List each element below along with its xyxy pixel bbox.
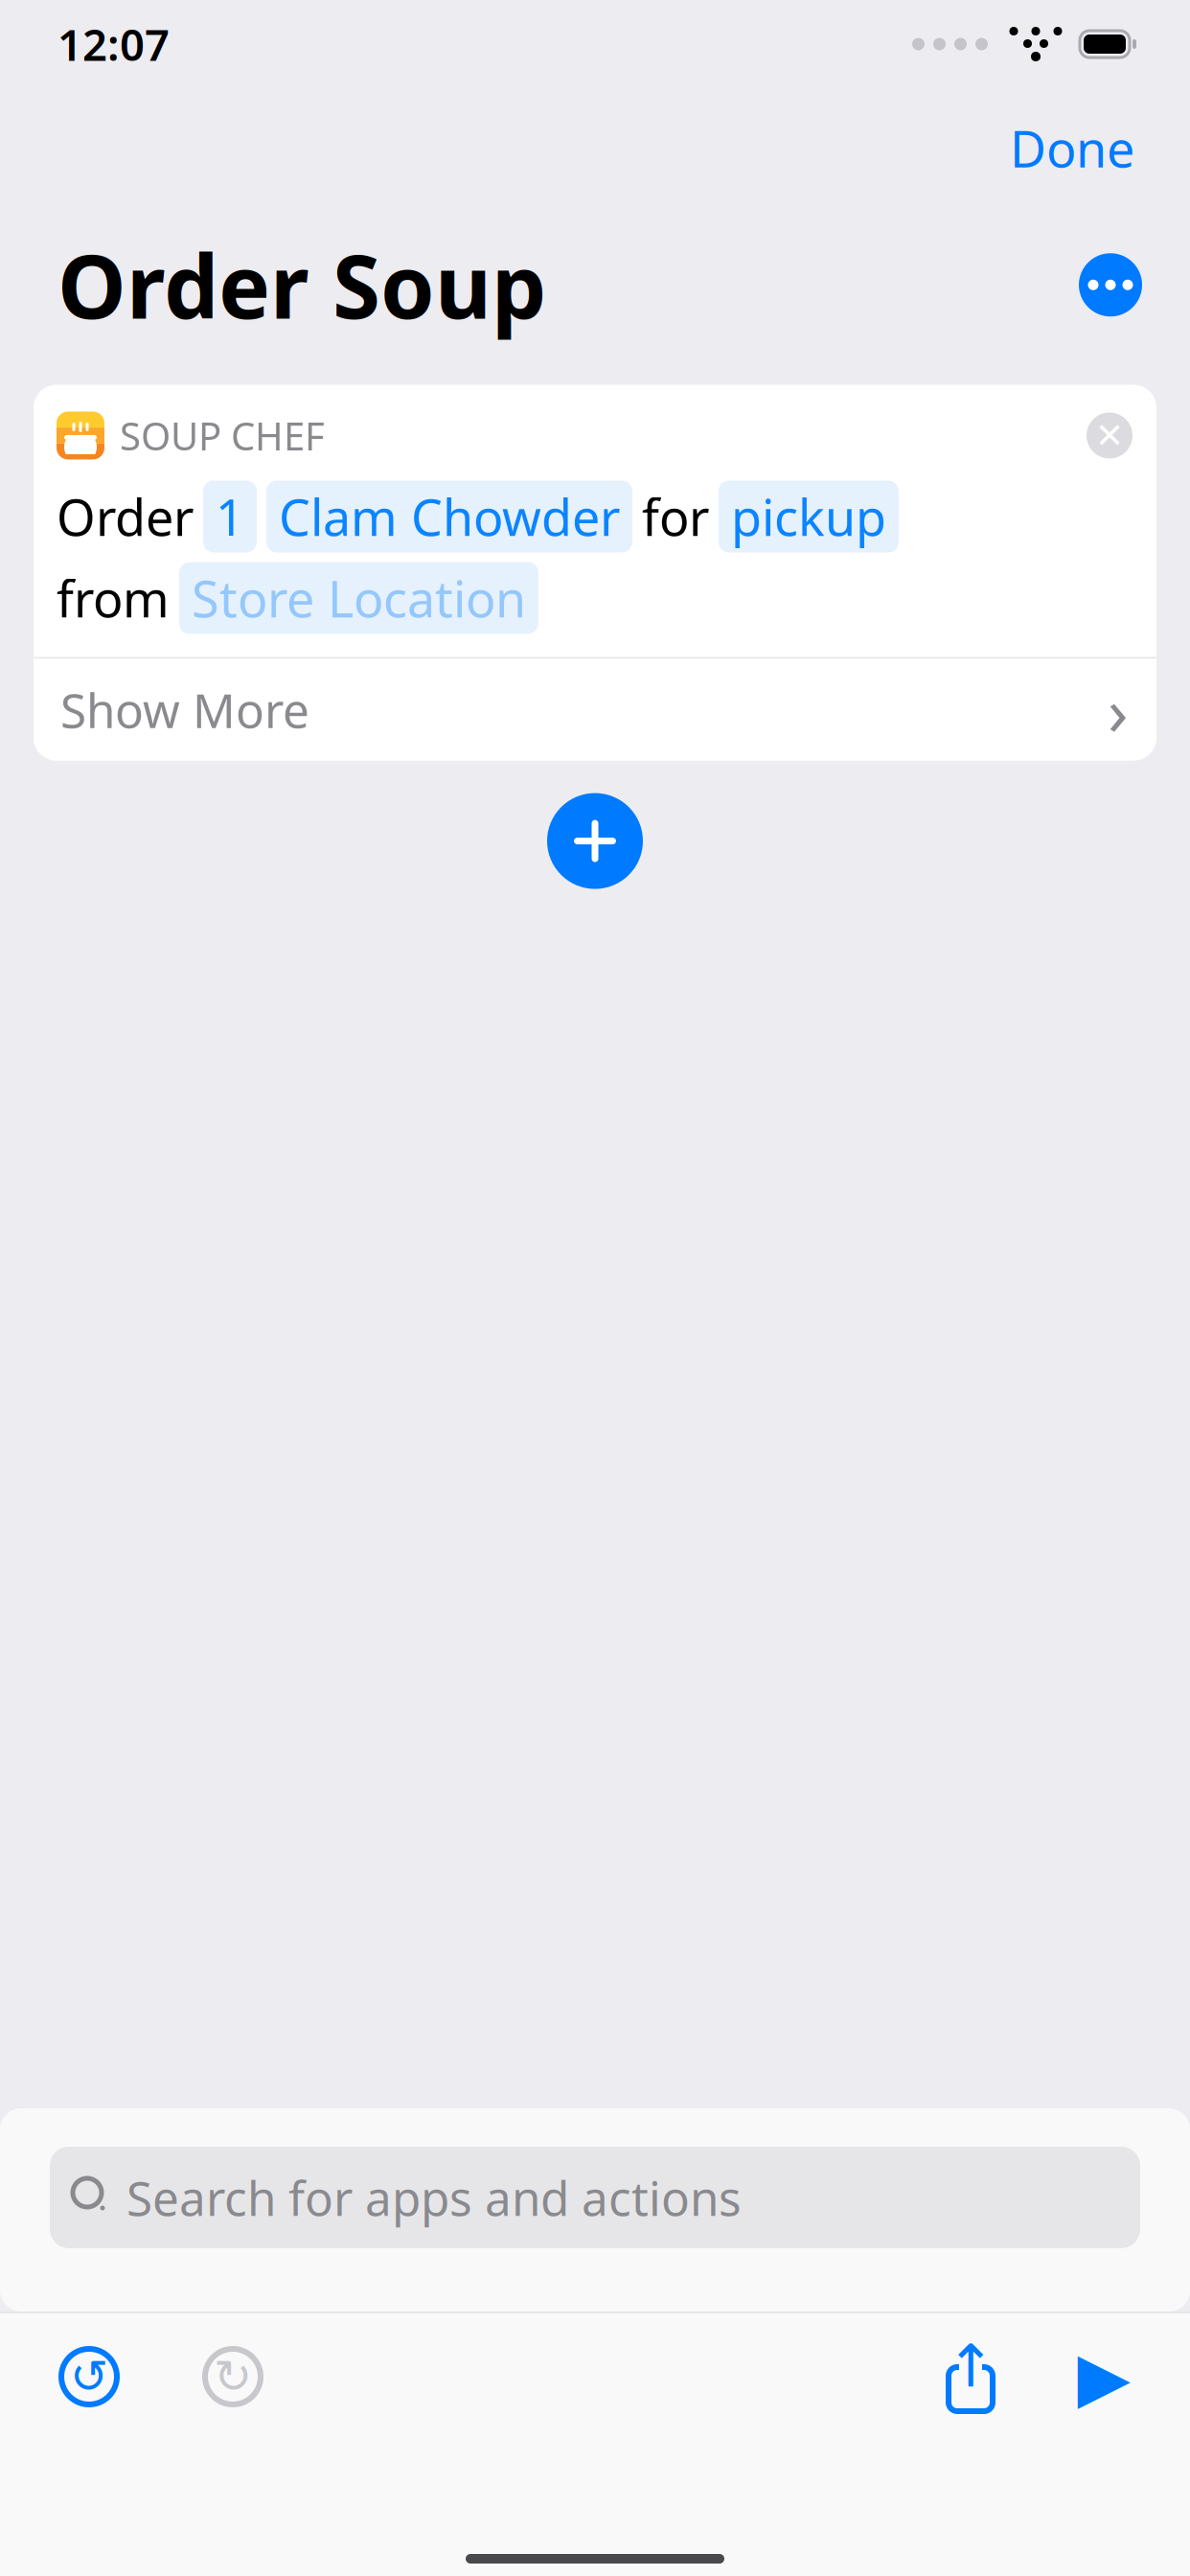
- button[interactable]: Redo: [161, 2313, 305, 2440]
- staticText: ›: [1108, 666, 1128, 754]
- staticText: Order Soup: [57, 227, 546, 343]
- button[interactable]: More options: [1069, 244, 1152, 326]
- staticText: Clam Chowder: [279, 483, 620, 550]
- staticText: for: [642, 483, 709, 550]
- staticText: Order: [57, 483, 194, 550]
- staticText: Search for apps and actions: [126, 2166, 742, 2229]
- button[interactable]: Add action: [536, 782, 654, 900]
- staticText: ▶: [1077, 2337, 1130, 2416]
- staticText: ✕: [1095, 416, 1124, 455]
- button[interactable]: Show More: [34, 659, 1156, 761]
- staticText: from: [57, 565, 170, 631]
- staticText: 1: [216, 483, 244, 550]
- staticText: Done: [1010, 115, 1134, 181]
- staticText: pickup: [731, 483, 886, 550]
- button[interactable]: Share: [899, 2313, 1042, 2440]
- staticText: SOUP CHEF: [120, 410, 325, 461]
- staticText: Show More: [60, 678, 309, 741]
- staticText: ↑: [946, 2333, 995, 2399]
- button[interactable]: Search for apps and actions: [50, 2147, 1140, 2248]
- button[interactable]: Done: [995, 103, 1150, 193]
- button[interactable]: Remove action: [1078, 404, 1141, 467]
- staticText: 12:07: [57, 15, 170, 73]
- staticText: ↻: [214, 2351, 252, 2403]
- staticText: ↺: [70, 2351, 108, 2403]
- staticText: Store Location: [192, 565, 526, 631]
- button[interactable]: Undo: [17, 2313, 161, 2440]
- button[interactable]: Run shortcut: [1042, 2313, 1165, 2440]
